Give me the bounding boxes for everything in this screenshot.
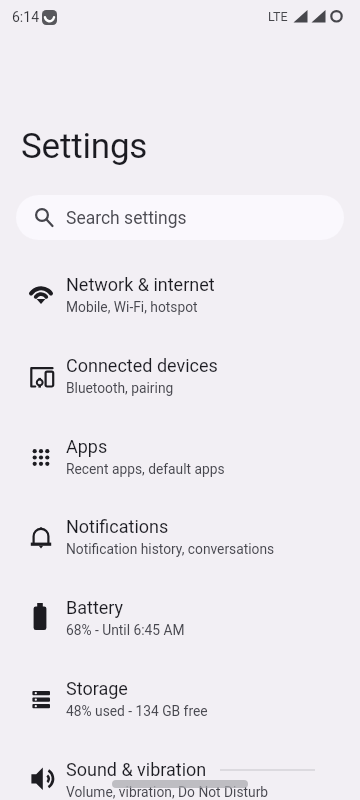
button[interactable]: Battery (0, 578, 360, 659)
staticText: Recent apps, default apps (66, 461, 225, 477)
staticText: Volume, vibration, Do Not Disturb (66, 784, 269, 800)
staticText: Sound & vibration (66, 759, 207, 780)
staticText: 68% - Until 6:45 AM (66, 622, 185, 638)
staticText: 6:14 (12, 9, 39, 25)
button[interactable]: Network & internet (0, 255, 360, 336)
staticText: LTE (268, 9, 288, 24)
staticText: Mobile, Wi-Fi, hotspot (66, 299, 198, 315)
staticText: Battery (66, 597, 124, 618)
staticText: Apps (66, 436, 108, 457)
button[interactable]: Search settings (16, 195, 344, 240)
staticText: Storage (66, 678, 128, 699)
button[interactable]: Storage (0, 659, 360, 740)
staticText: Search settings (66, 208, 187, 229)
staticText: Connected devices (66, 355, 218, 376)
button[interactable]: Sound & vibration (0, 740, 360, 800)
button[interactable]: Notifications (0, 497, 360, 578)
button[interactable]: Connected devices (0, 336, 360, 417)
staticText: Notifications (66, 516, 169, 537)
staticText: Notification history, conversations (66, 541, 275, 557)
staticText: Settings (21, 126, 148, 167)
staticText: Network & internet (66, 274, 215, 295)
button[interactable]: Apps (0, 417, 360, 498)
staticText: Bluetooth, pairing (66, 380, 174, 396)
staticText: 48% used - 134 GB free (66, 703, 208, 719)
